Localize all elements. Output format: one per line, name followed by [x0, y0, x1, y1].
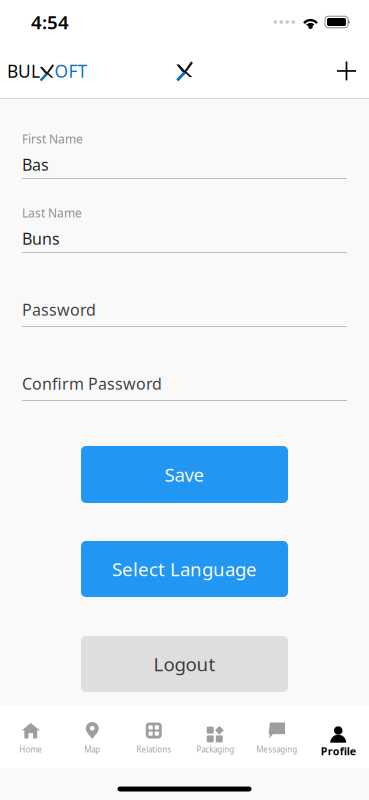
staticText: Logout — [153, 652, 215, 676]
button[interactable]: Add — [324, 44, 369, 98]
button[interactable]: Map — [61, 706, 123, 768]
staticText: OFT — [55, 59, 88, 82]
button[interactable]: Profile — [307, 706, 369, 768]
button[interactable]: Select Language — [81, 541, 288, 597]
staticText: BUL — [7, 59, 40, 82]
staticText: Save — [164, 462, 204, 487]
staticText: Confirm Password — [22, 373, 162, 394]
staticText: Password — [22, 299, 96, 320]
staticText: Messaging — [256, 744, 297, 755]
staticText: Last Name — [22, 205, 82, 221]
staticText: Profile — [321, 744, 356, 758]
button[interactable]: Logout — [81, 636, 288, 692]
button[interactable]: Save — [81, 446, 288, 503]
staticText: Home — [19, 744, 42, 755]
staticText: Relations — [136, 744, 171, 755]
staticText: Buns — [22, 228, 60, 249]
staticText: Select Language — [112, 557, 257, 581]
button[interactable]: Relations — [123, 706, 184, 768]
button[interactable]: Home — [0, 706, 61, 768]
staticText: Packaging — [196, 744, 234, 755]
staticText: Bas — [22, 154, 49, 175]
staticText: First Name — [22, 131, 83, 147]
staticText: Map — [84, 744, 100, 755]
button[interactable]: Messaging — [246, 706, 307, 768]
staticText: 4:54 — [31, 10, 69, 34]
button[interactable]: Packaging — [184, 706, 246, 768]
